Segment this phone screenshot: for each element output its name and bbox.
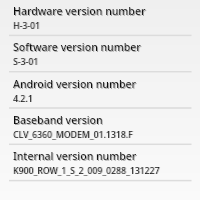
staticText: K900_ROW_1_S_2_009_0288_131227 <box>14 165 161 177</box>
staticText: Baseband version <box>13 113 103 127</box>
staticText: H-3-01 <box>13 20 40 32</box>
staticText: Android version number <box>13 77 136 91</box>
staticText: Android version number <box>14 78 137 92</box>
staticText: K900_ROW_1_S_2_009_0288_131227 <box>13 165 160 177</box>
staticText: Internal version number <box>13 149 137 163</box>
staticText: Software version number <box>13 40 141 54</box>
staticText: CLV_6360_MODEM_01.1318.F <box>13 129 133 141</box>
staticText: 4.2.1 <box>13 93 33 105</box>
staticText: Baseband version <box>14 114 104 128</box>
staticText: Internal version number <box>14 150 138 164</box>
staticText: Software version number <box>14 41 142 55</box>
staticText: H-3-01 <box>14 20 41 32</box>
staticText: CLV_6360_MODEM_01.1318.F <box>14 129 134 141</box>
staticText: Hardware version number <box>14 5 147 19</box>
staticText: 4.2.1 <box>14 93 34 105</box>
staticText: Hardware version number <box>13 4 146 18</box>
button[interactable]: Hardware version number <box>0 0 200 35</box>
button[interactable]: Baseband version <box>0 108 200 144</box>
button[interactable]: Software version number <box>0 35 200 71</box>
button[interactable]: Android version number <box>0 72 200 108</box>
staticText: S-3-01 <box>13 56 39 68</box>
staticText: S-3-01 <box>14 56 40 68</box>
button[interactable]: Internal version number <box>0 144 200 180</box>
